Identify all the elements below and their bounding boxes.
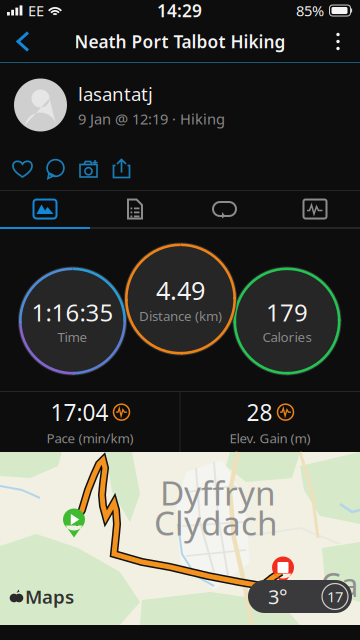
staticText: Pace (min/km) [46,429,133,447]
button[interactable]: Back [0,21,44,62]
staticText: lasantatj [78,81,153,106]
staticText: 179 [266,296,308,328]
button[interactable]: Add photo [72,147,105,190]
button[interactable]: More options [316,21,360,62]
staticText: 9 Jan @ 12:19 · Hiking [78,109,225,129]
staticText: 17:04 [50,397,108,427]
button[interactable]: Laps [180,191,270,227]
staticText: 1:16:35 [31,296,113,328]
staticText: 14:29 [157,0,202,22]
staticText: Distance (km) [139,307,222,325]
staticText: 17 [327,587,343,606]
staticText: Time [57,328,87,346]
button[interactable]: Details [90,191,180,227]
staticText: Calories [262,328,311,346]
staticText: Clydach [154,500,278,545]
staticText: 28 [246,397,272,427]
staticText: Elev. Gain (m) [229,429,310,447]
button[interactable]: Like [6,147,39,190]
staticText: Maps [25,584,74,609]
staticText: 85% [296,1,324,20]
button[interactable]: Charts [270,191,360,227]
staticText: 4.49 [156,273,205,307]
button[interactable]: Share [105,147,138,190]
staticText: EE [28,1,44,20]
button[interactable]: Comment [39,147,72,190]
button[interactable]: Photos [0,191,90,227]
staticText: Neath Port Talbot Hiking [74,30,285,53]
staticText: Dyffryn [160,470,276,515]
staticText: 3° [268,583,288,610]
staticText: Cac [320,563,360,606]
